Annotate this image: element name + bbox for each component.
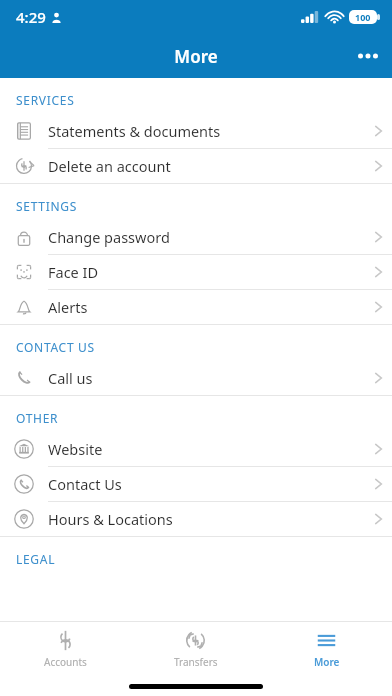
- staticText: Alerts: [48, 297, 364, 317]
- staticText: 4:29: [16, 7, 46, 27]
- button[interactable]: Alerts: [0, 290, 392, 325]
- button[interactable]: Call us: [0, 361, 392, 396]
- staticText: Delete an account: [48, 156, 364, 176]
- button[interactable]: Face ID: [0, 255, 392, 290]
- staticText: OTHER: [16, 410, 59, 426]
- staticText: Hours & Locations: [48, 509, 364, 529]
- staticText: CONTACT US: [16, 339, 95, 355]
- staticText: SETTINGS: [16, 198, 77, 214]
- staticText: Transfers: [174, 655, 218, 669]
- staticText: More: [314, 655, 340, 669]
- button[interactable]: Hours & Locations: [0, 502, 392, 537]
- button[interactable]: Transfers: [130, 622, 261, 676]
- staticText: Statements & documents: [48, 121, 364, 141]
- staticText: More: [174, 45, 218, 68]
- staticText: Contact Us: [48, 474, 364, 494]
- staticText: Call us: [48, 368, 364, 388]
- button[interactable]: Website: [0, 432, 392, 467]
- staticText: LEGAL: [16, 551, 56, 567]
- staticText: Change password: [48, 227, 364, 247]
- staticText: 100: [355, 11, 371, 23]
- button[interactable]: Statements & documents: [0, 114, 392, 149]
- staticText: Face ID: [48, 262, 364, 282]
- button[interactable]: Change password: [0, 220, 392, 255]
- staticText: Accounts: [44, 655, 87, 669]
- button[interactable]: Delete an account: [0, 149, 392, 184]
- button[interactable]: More options: [344, 34, 392, 78]
- button[interactable]: Contact Us: [0, 467, 392, 502]
- button[interactable]: Accounts: [0, 622, 130, 676]
- staticText: SERVICES: [16, 92, 75, 108]
- staticText: Website: [48, 439, 364, 459]
- button[interactable]: More: [261, 622, 392, 676]
